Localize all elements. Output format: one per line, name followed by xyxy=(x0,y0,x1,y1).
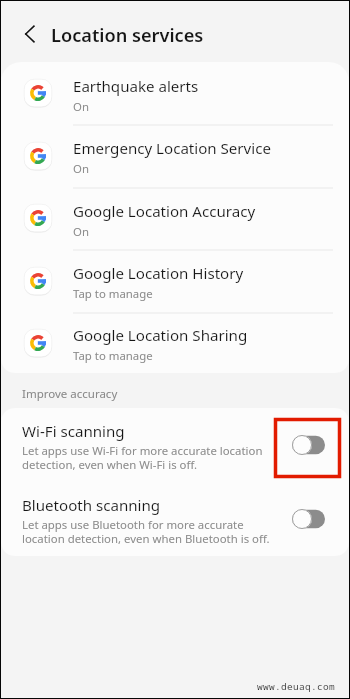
staticText: Google Location History xyxy=(73,263,244,284)
button[interactable]: Back xyxy=(10,14,50,54)
staticText: www.deuaq.com xyxy=(257,680,336,693)
button[interactable]: Google Location Sharing xyxy=(1,312,349,373)
staticText: Google Location Accuracy xyxy=(73,201,256,222)
staticText: On xyxy=(73,224,89,240)
button[interactable]: Earthquake alerts xyxy=(1,62,349,124)
button[interactable]: Bluetooth scanning xyxy=(1,482,349,556)
button[interactable]: Emergency Location Service xyxy=(1,124,349,187)
staticText: Let apps use Bluetooth for more accurate… xyxy=(22,517,270,547)
staticText: Tap to manage xyxy=(73,348,153,364)
staticText: Location services xyxy=(51,23,204,48)
staticText: Emergency Location Service xyxy=(73,138,271,159)
button[interactable]: Google Location Accuracy xyxy=(1,187,349,249)
staticText: On xyxy=(73,99,89,115)
staticText: Let apps use Wi-Fi for more accurate loc… xyxy=(22,443,263,473)
staticText: Wi-Fi scanning xyxy=(22,421,125,442)
staticText: Bluetooth scanning xyxy=(22,495,161,516)
button[interactable]: Wi-Fi scanning xyxy=(1,408,349,482)
staticText: Google Location Sharing xyxy=(73,325,248,346)
button[interactable]: Google Location History xyxy=(1,249,349,312)
staticText: Tap to manage xyxy=(73,286,153,302)
staticText: Improve accuracy xyxy=(22,386,118,402)
staticText: Earthquake alerts xyxy=(73,76,199,97)
staticText: On xyxy=(73,161,89,177)
